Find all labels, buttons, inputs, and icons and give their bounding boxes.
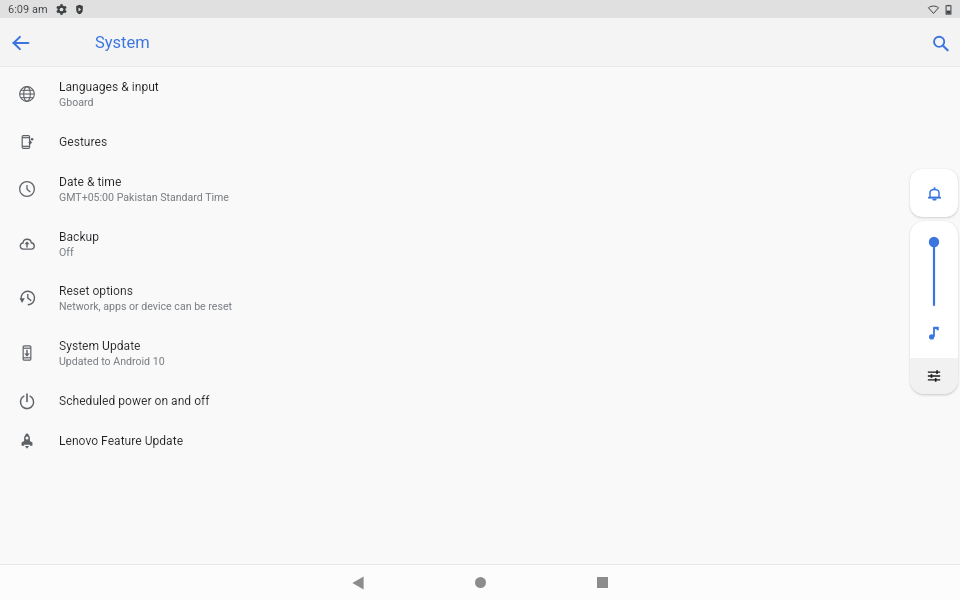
staticText: Lenovo Feature Update: [59, 434, 184, 448]
button[interactable]: Languages & input: [0, 66, 960, 121]
button[interactable]: Search: [928, 31, 952, 55]
button[interactable]: Backup: [0, 217, 960, 271]
staticText: System Update: [59, 339, 141, 353]
staticText: Scheduled power on and off: [59, 394, 210, 408]
button[interactable]: Reset options: [0, 271, 960, 324]
button[interactable]: Lenovo Feature Update: [0, 421, 960, 461]
button[interactable]: Recents: [580, 565, 624, 600]
staticText: Backup: [59, 230, 100, 244]
staticText: Updated to Android 10: [59, 355, 165, 367]
staticText: Network, apps or device can be reset: [59, 300, 232, 312]
staticText: Off: [59, 246, 74, 258]
button[interactable]: Gestures: [0, 122, 960, 162]
button[interactable]: Home: [458, 565, 502, 600]
staticText: Languages & input: [59, 80, 159, 94]
button[interactable]: Back: [9, 31, 33, 55]
staticText: Gestures: [59, 135, 108, 149]
button[interactable]: System Update: [0, 326, 960, 380]
button[interactable]: Scheduled power on and off: [0, 381, 960, 421]
staticText: 6:09 am: [8, 3, 48, 16]
button[interactable]: Back: [336, 565, 380, 600]
button[interactable]: Ringer mode: [910, 169, 958, 217]
staticText: GMT+05:00 Pakistan Standard Time: [59, 191, 229, 203]
staticText: System: [95, 33, 150, 52]
staticText: Gboard: [59, 96, 94, 108]
staticText: Date & time: [59, 175, 122, 189]
button[interactable]: Volume settings: [910, 358, 958, 394]
button[interactable]: Date & time: [0, 162, 960, 216]
staticText: Reset options: [59, 284, 133, 298]
